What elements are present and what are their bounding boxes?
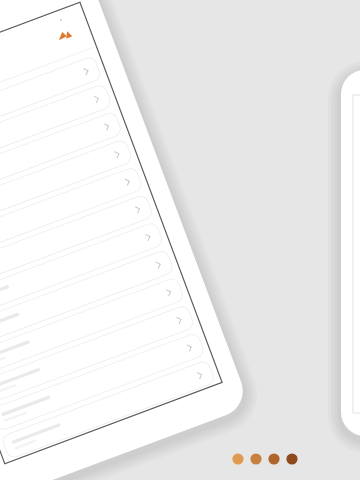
button[interactable]: Screenshot 2 [0, 0, 360, 480]
button[interactable]: Page indicator [0, 0, 360, 480]
button[interactable]: Screenshot 1 [0, 0, 360, 480]
